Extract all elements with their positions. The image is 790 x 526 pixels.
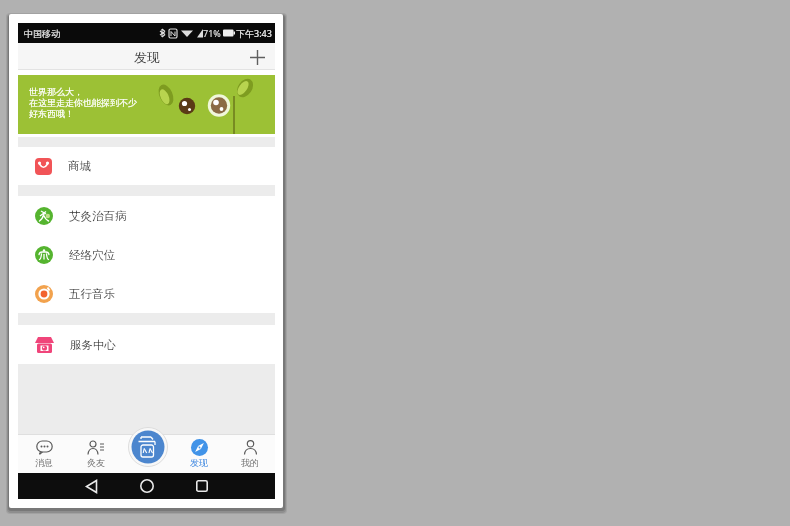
button[interactable]: 消息: [18, 434, 70, 473]
staticText: 经络穴位: [69, 248, 115, 262]
button[interactable]: 灸友: [70, 434, 122, 473]
staticText: 服务中心: [70, 338, 116, 352]
button[interactable]: 发现: [173, 434, 224, 473]
button[interactable]: 商城: [18, 147, 275, 185]
button[interactable]: [248, 48, 266, 66]
button[interactable]: 经络穴位: [18, 235, 275, 274]
staticText: 下午3:43: [236, 27, 272, 39]
staticText: 发现: [190, 457, 208, 468]
button[interactable]: 五行音乐: [18, 274, 275, 313]
staticText: 好东西哦！: [29, 108, 74, 119]
staticText: 在这里走走你也能探到不少: [29, 97, 137, 108]
staticText: 中国移动: [24, 28, 60, 39]
staticText: 消息: [35, 457, 53, 468]
button[interactable]: [119, 473, 174, 499]
button[interactable]: [122, 434, 173, 473]
staticText: 71%: [203, 27, 221, 39]
staticText: 灸友: [87, 457, 105, 468]
button[interactable]: [128, 427, 168, 467]
staticText: 世界那么大，: [29, 86, 83, 97]
button[interactable]: 服务中心: [18, 325, 275, 364]
button[interactable]: 世界那么大，: [18, 75, 275, 134]
staticText: 我的: [241, 457, 259, 468]
staticText: 商城: [68, 159, 91, 173]
staticText: 五行音乐: [69, 287, 115, 301]
button[interactable]: 艾灸治百病: [18, 196, 275, 235]
staticText: 艾灸治百病: [69, 209, 127, 223]
staticText: 发现: [134, 49, 160, 65]
button[interactable]: [64, 473, 119, 499]
button[interactable]: [174, 473, 229, 499]
button[interactable]: 我的: [224, 434, 275, 473]
